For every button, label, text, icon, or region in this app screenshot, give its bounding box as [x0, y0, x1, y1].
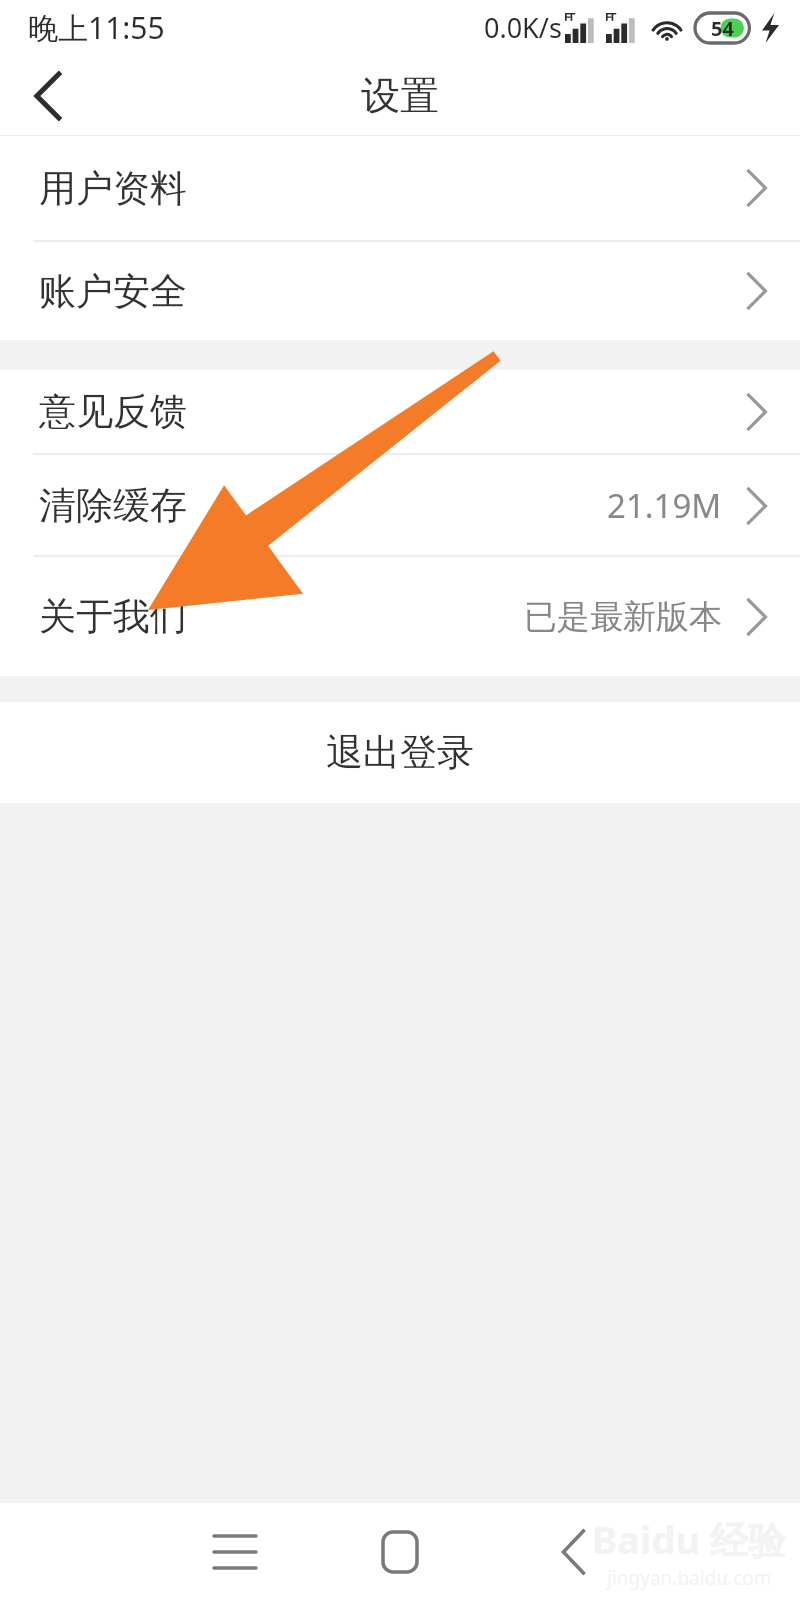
staticText: 退出登录 [326, 729, 474, 776]
staticText: 清除缓存 [39, 482, 187, 529]
button[interactable]: Back [0, 55, 86, 136]
staticText: Baidu 经验 [592, 1513, 786, 1565]
button[interactable]: 清除缓存 [0, 455, 800, 555]
staticText: 21.19M [607, 483, 722, 528]
staticText: 54 [711, 15, 734, 42]
staticText: jingyan.baidu.com [607, 1565, 772, 1591]
staticText: 关于我们 [39, 593, 187, 640]
staticText: 用户资料 [39, 165, 187, 212]
button[interactable]: 关于我们 [0, 557, 800, 676]
button[interactable]: Home [355, 1507, 445, 1597]
button[interactable]: 退出登录 [0, 702, 800, 803]
button[interactable]: 意见反馈 [0, 370, 800, 453]
staticText: 晚上11:55 [28, 7, 165, 48]
button[interactable]: 用户资料 [0, 136, 800, 240]
staticText: 已是最新版本 [524, 596, 722, 638]
staticText: 0.0K/s [484, 9, 562, 46]
button[interactable]: Back [525, 1507, 615, 1597]
staticText: 意见反馈 [39, 388, 187, 435]
button[interactable]: 账户安全 [0, 242, 800, 340]
staticText: 设置 [361, 71, 439, 120]
button[interactable]: Recent apps [190, 1507, 280, 1597]
staticText: 账户安全 [39, 268, 187, 315]
